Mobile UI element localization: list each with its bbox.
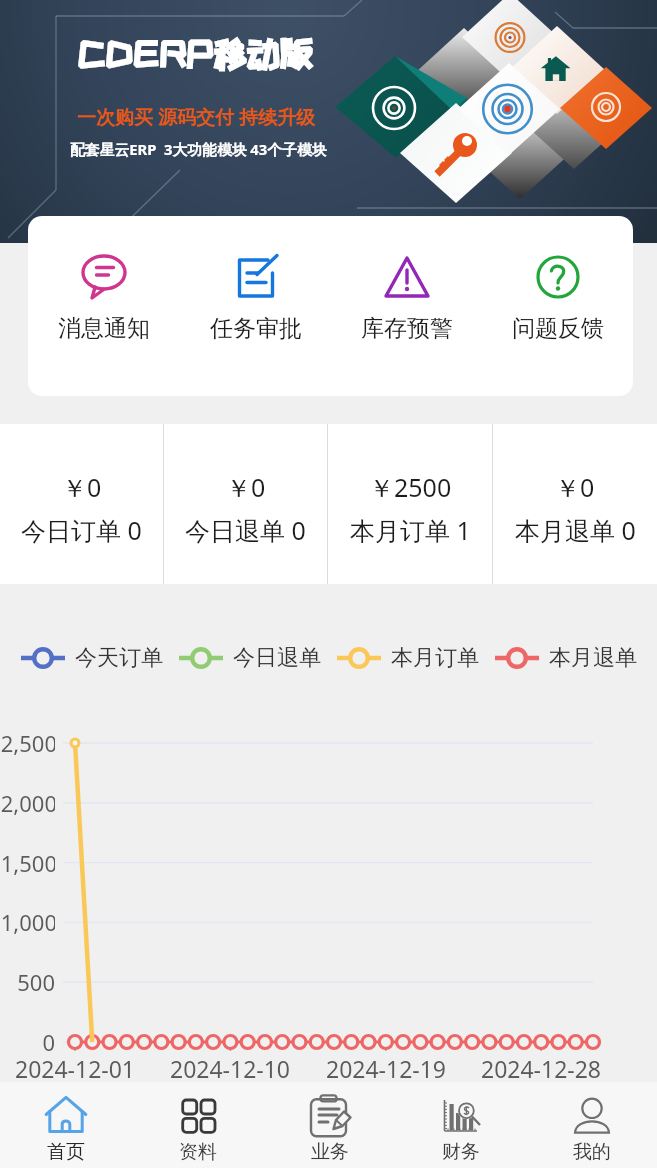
staticText: 财务 [442,1140,480,1164]
staticText: 今日退单 0 [185,513,306,547]
button[interactable]: 本月退单 [495,644,637,672]
button[interactable]: 任务审批 [180,216,331,396]
staticText: 2024-12-01 [5,1053,145,1084]
staticText: 2024-12-10 [160,1053,300,1084]
staticText: 消息通知 [58,314,150,343]
staticText: 我的 [573,1140,611,1164]
staticText: 资料 [179,1140,217,1164]
button[interactable]: 本月订单 [337,644,479,672]
staticText: 今日退单 [233,644,321,672]
button[interactable]: 消息通知 [28,216,180,396]
button[interactable]: 首页 [0,1082,132,1168]
staticText: 500 [0,967,55,997]
staticText: 今天订单 [75,644,163,672]
button[interactable]: 资料 [132,1082,264,1168]
button[interactable]: 业务 [264,1082,395,1168]
staticText: 业务 [311,1140,349,1164]
staticText: 本月订单 1 [350,513,471,547]
staticText: ￥2500 [369,470,452,504]
button[interactable]: 问题反馈 [482,216,633,396]
button[interactable]: 今天订单 [21,644,163,672]
staticText: 2024-12-19 [316,1053,456,1084]
staticText: 1,000 [0,907,55,937]
button[interactable]: 我的 [526,1082,657,1168]
staticText: 2024-12-28 [471,1053,611,1084]
button[interactable]: ￥0 [0,424,163,584]
staticText: 一次购买 源码交付 持续升级 [77,104,315,130]
button[interactable]: 今日退单 [179,644,321,672]
staticText: 配套星云ERP 3大功能模块 43个子模块 [70,139,327,159]
staticText: 本月退单 0 [515,513,636,547]
staticText: 问题反馈 [512,314,604,343]
button[interactable]: 财务 [395,1082,526,1168]
staticText: CDERP移动版 [77,36,313,72]
staticText: 2,500 [0,728,55,758]
staticText: 任务审批 [210,314,302,343]
staticText: 本月退单 [549,644,637,672]
button[interactable]: 库存预警 [331,216,482,396]
staticText: ￥0 [62,470,102,504]
button[interactable]: ￥0 [493,424,657,584]
staticText: 本月订单 [391,644,479,672]
staticText: 今日订单 0 [21,513,142,547]
button[interactable]: ￥0 [164,424,327,584]
staticText: 2,000 [0,788,55,818]
button[interactable]: ￥2500 [328,424,492,584]
staticText: ￥0 [226,470,266,504]
staticText: 0 [0,1027,55,1057]
staticText: ￥0 [555,470,595,504]
staticText: 1,500 [0,848,55,878]
staticText: 首页 [47,1140,85,1164]
staticText: 库存预警 [361,314,453,343]
